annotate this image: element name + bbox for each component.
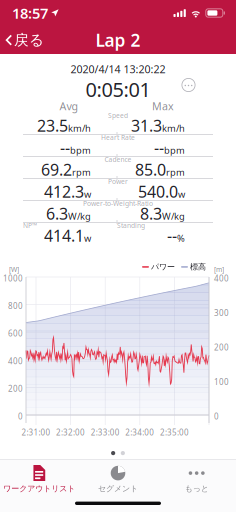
staticText: 85.0 bbox=[135, 159, 166, 180]
staticText: 0 bbox=[214, 411, 219, 422]
staticText: 6.3 bbox=[46, 203, 68, 224]
staticText: 0 bbox=[18, 411, 23, 422]
staticText: 18:57 bbox=[12, 3, 48, 23]
staticText: 2:33:00 bbox=[91, 427, 120, 438]
staticText: w bbox=[178, 188, 185, 200]
staticText: ワークアウトリスト bbox=[3, 484, 75, 493]
staticText: 200 bbox=[214, 342, 229, 353]
staticText: Cadence bbox=[104, 155, 131, 164]
button[interactable]: ワークアウトリスト bbox=[0, 460, 79, 499]
staticText: 69.2 bbox=[41, 159, 72, 180]
staticText: W/kg bbox=[68, 210, 91, 222]
staticText: rpm bbox=[72, 166, 91, 178]
staticText: Max bbox=[152, 99, 174, 113]
staticText: 400 bbox=[214, 273, 229, 284]
button[interactable]: Comments bbox=[181, 78, 196, 93]
staticText: bpm bbox=[70, 144, 91, 156]
button[interactable]: もっと bbox=[157, 460, 236, 499]
staticText: km/h bbox=[68, 122, 91, 134]
staticText: % bbox=[177, 232, 185, 244]
staticText: km/h bbox=[162, 122, 185, 134]
staticText: 31.3 bbox=[131, 115, 162, 136]
staticText: 540.0 bbox=[138, 181, 178, 202]
staticText: 600 bbox=[8, 328, 23, 339]
staticText: 0:05:01 bbox=[85, 76, 150, 103]
staticText: 2:31:00 bbox=[21, 427, 50, 438]
staticText: W/kg bbox=[162, 210, 185, 222]
staticText: Lap 2 bbox=[95, 28, 140, 51]
staticText: 414.1 bbox=[44, 225, 84, 246]
staticText: 412.3 bbox=[44, 181, 84, 202]
staticText: NP™ bbox=[23, 221, 37, 230]
staticText: Power bbox=[108, 177, 128, 186]
staticText: 800 bbox=[8, 301, 23, 311]
staticText: 2020/4/14 13:20:22 bbox=[70, 62, 165, 76]
staticText: 8.3 bbox=[140, 203, 162, 224]
staticText: [m] bbox=[214, 265, 224, 274]
staticText: Speed bbox=[108, 111, 128, 120]
staticText: パワー bbox=[151, 262, 175, 272]
staticText: rpm bbox=[166, 166, 185, 178]
staticText: Heart Rate bbox=[101, 133, 135, 142]
button[interactable]: 戻る bbox=[0, 25, 52, 55]
staticText: 400 bbox=[8, 356, 23, 366]
staticText: 2:34:00 bbox=[125, 427, 154, 438]
staticText: もっと bbox=[185, 484, 209, 493]
staticText: w bbox=[84, 232, 91, 244]
staticText: 戻る bbox=[14, 31, 44, 49]
staticText: 23.5 bbox=[37, 115, 68, 136]
staticText: セグメント bbox=[98, 484, 138, 493]
staticText: Power-to-Weight-Ratio bbox=[83, 199, 153, 208]
staticText: Standing bbox=[117, 221, 145, 230]
staticText: -- bbox=[167, 225, 177, 246]
staticText: 200 bbox=[8, 383, 23, 394]
staticText: 1000 bbox=[3, 273, 23, 284]
staticText: [W] bbox=[9, 265, 19, 274]
staticText: -- bbox=[154, 137, 164, 158]
staticText: Avg bbox=[59, 99, 78, 113]
staticText: 2:32:00 bbox=[56, 427, 85, 438]
staticText: -- bbox=[60, 137, 70, 158]
button[interactable]: セグメント bbox=[79, 460, 157, 499]
staticText: 100 bbox=[214, 376, 229, 387]
staticText: 300 bbox=[214, 307, 229, 318]
staticText: 標高 bbox=[190, 262, 206, 272]
staticText: 2:35:00 bbox=[160, 427, 189, 438]
staticText: w bbox=[84, 188, 91, 200]
staticText: bpm bbox=[164, 144, 185, 156]
